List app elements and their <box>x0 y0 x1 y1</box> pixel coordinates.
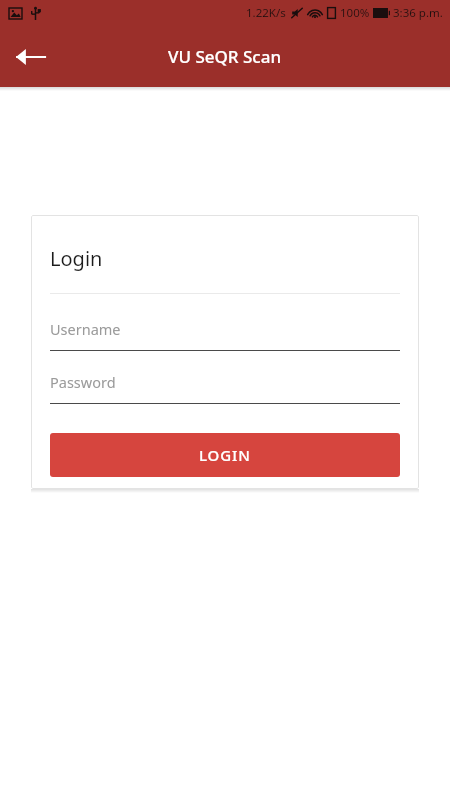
staticText: 1.22K/s <box>246 5 286 21</box>
staticText: Username <box>50 319 121 339</box>
staticText: 100% <box>340 5 370 21</box>
staticText: Login <box>50 245 103 272</box>
button[interactable]: LOGIN <box>50 433 400 477</box>
button[interactable]: Back <box>6 33 54 81</box>
button[interactable]: Password <box>50 369 400 404</box>
staticText: Password <box>50 372 116 392</box>
staticText: VU SeQR Scan <box>168 45 282 68</box>
staticText: 3:36 p.m. <box>393 5 443 21</box>
staticText: LOGIN <box>199 445 251 465</box>
button[interactable]: Username <box>50 316 400 351</box>
